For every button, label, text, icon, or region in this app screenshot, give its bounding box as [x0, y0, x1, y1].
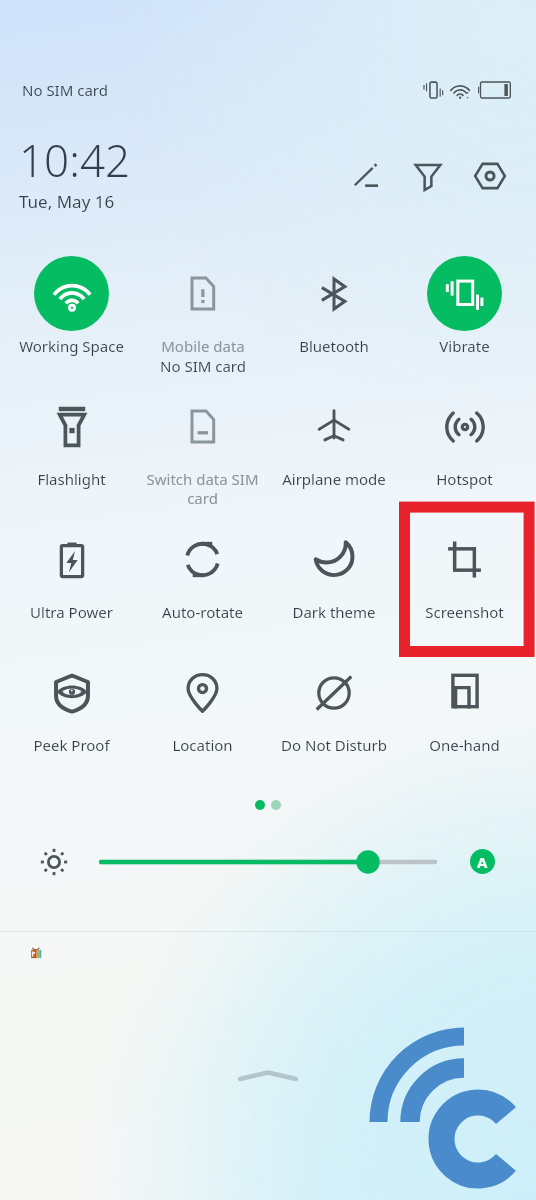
button[interactable]: Settings: [468, 154, 512, 198]
button[interactable]: Bluetooth: [268, 228, 399, 361]
staticText: Vibrate: [439, 336, 490, 356]
button[interactable]: Working Space: [5, 228, 137, 361]
staticText: Switch data SIM card: [139, 469, 266, 509]
staticText: Auto-rotate: [162, 602, 243, 622]
button[interactable]: Switch data SIM card: [137, 361, 268, 494]
button[interactable]: Filter: [406, 154, 450, 198]
button[interactable]: Mobile data: [137, 228, 268, 361]
button[interactable]: Edit: [344, 154, 388, 198]
staticText: No SIM card: [22, 80, 108, 100]
staticText: Bluetooth: [299, 336, 369, 356]
button[interactable]: Airplane mode: [268, 361, 399, 494]
button[interactable]: Hotspot: [399, 361, 530, 494]
button[interactable]: Location: [137, 627, 268, 760]
staticText: Working Space: [19, 336, 124, 356]
button[interactable]: Flashlight: [5, 361, 137, 494]
staticText: Mobile data: [161, 336, 245, 356]
button[interactable]: Auto-rotate: [137, 494, 268, 627]
staticText: No SIM card: [160, 356, 246, 376]
staticText: Ultra Power: [30, 602, 113, 622]
staticText: Airplane mode: [282, 469, 386, 489]
staticText: 10:42: [19, 130, 131, 190]
button[interactable]: Dark theme: [268, 494, 399, 627]
button[interactable]: Peek Proof: [5, 627, 137, 760]
button[interactable]: Ultra Power: [5, 494, 137, 627]
button[interactable]: Auto brightness: [470, 849, 495, 874]
staticText: Hotspot: [436, 469, 493, 489]
staticText: Flashlight: [37, 469, 106, 489]
staticText: Peek Proof: [33, 735, 110, 755]
staticText: One-hand: [429, 735, 500, 755]
button[interactable]: One-hand: [399, 627, 530, 760]
button[interactable]: Screenshot: [399, 494, 530, 627]
staticText: Do Not Disturb: [281, 735, 387, 755]
staticText: Location: [172, 735, 233, 755]
staticText: Tue, May 16: [19, 190, 115, 213]
staticText: Screenshot: [425, 602, 504, 622]
staticText: A: [477, 852, 488, 872]
staticText: Dark theme: [292, 602, 376, 622]
button[interactable]: Do Not Disturb: [268, 627, 399, 760]
button[interactable]: Vibrate: [399, 228, 530, 361]
